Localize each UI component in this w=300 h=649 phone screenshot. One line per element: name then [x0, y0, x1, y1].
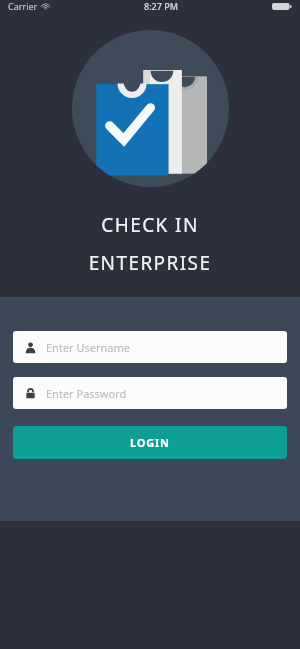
button[interactable]: Enter Password	[13, 377, 287, 409]
button[interactable]: LOGIN	[13, 426, 287, 459]
staticText: Carrier	[8, 0, 38, 12]
staticText: Enter Password	[46, 386, 127, 401]
staticText: LOGIN	[130, 435, 170, 450]
button[interactable]: Enter Username	[13, 331, 287, 363]
staticText: ENTERPRISE	[0, 250, 300, 276]
staticText: Enter Username	[46, 340, 131, 355]
staticText: 8:27 PM	[144, 0, 178, 12]
staticText: CHECK IN	[0, 212, 300, 238]
